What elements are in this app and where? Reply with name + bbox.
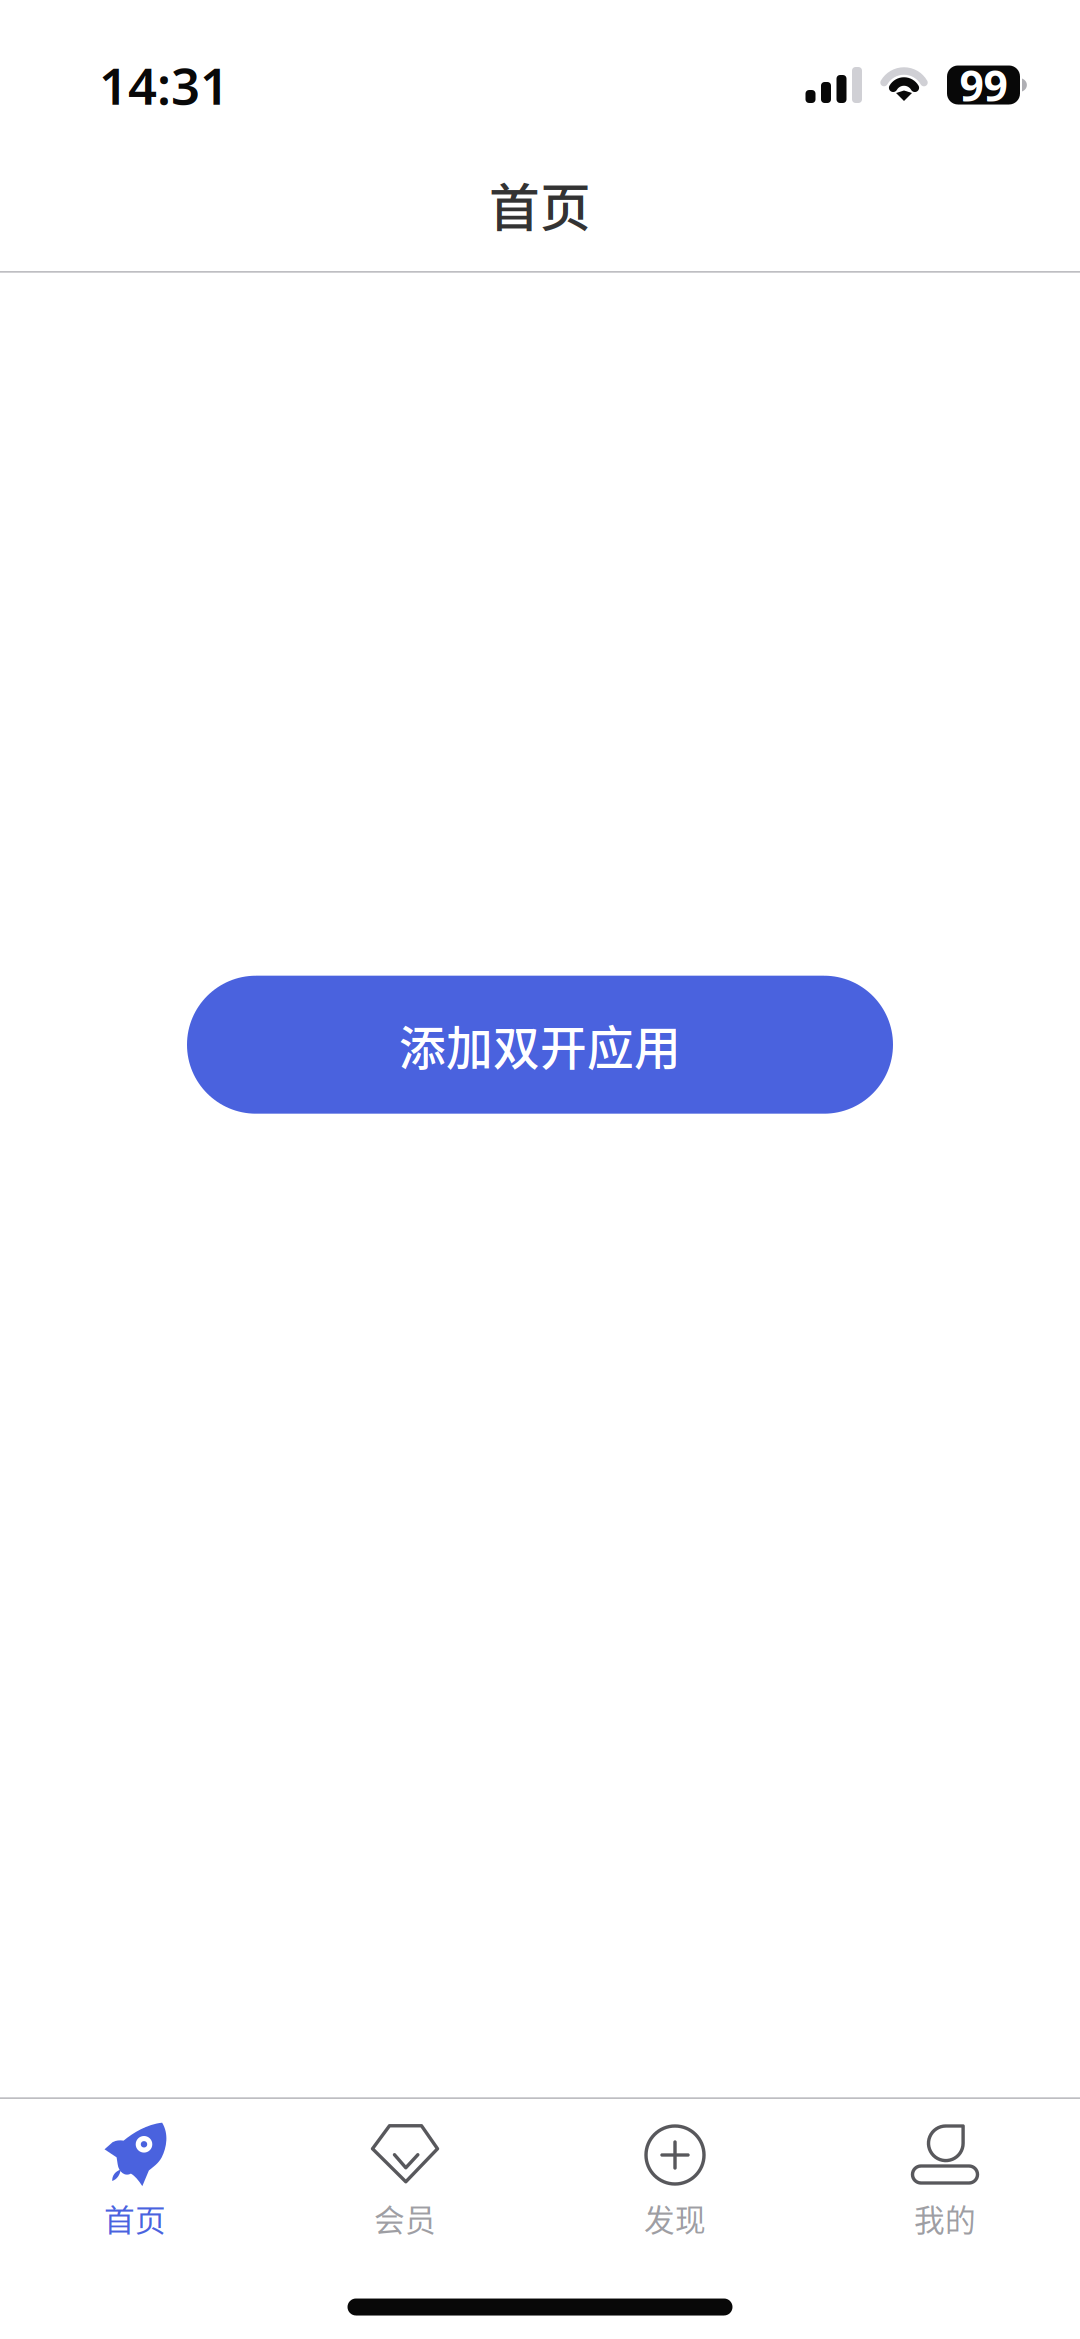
staticText: 首页: [104, 2196, 166, 2240]
button[interactable]: 发现: [540, 2099, 810, 2271]
button[interactable]: 我的: [810, 2099, 1080, 2271]
staticText: 发现: [644, 2196, 706, 2240]
button[interactable]: 添加双开应用: [187, 976, 893, 1114]
staticText: 我的: [914, 2196, 976, 2240]
button[interactable]: 会员: [270, 2099, 540, 2271]
staticText: 会员: [374, 2196, 436, 2240]
staticText: 添加双开应用: [399, 1011, 681, 1078]
staticText: 首页: [489, 168, 591, 241]
staticText: 99: [959, 57, 1007, 113]
staticText: 14:31: [99, 51, 229, 119]
button[interactable]: 首页: [0, 2099, 270, 2271]
